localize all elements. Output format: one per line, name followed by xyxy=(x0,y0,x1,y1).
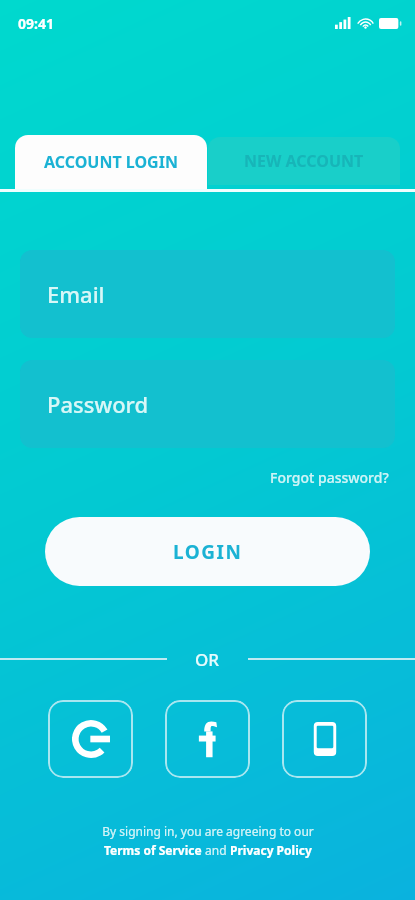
button[interactable]: Forgot password? xyxy=(266,464,393,491)
button[interactable]: Terms of Service xyxy=(104,842,202,858)
staticText: 09:41 xyxy=(18,14,54,33)
button[interactable]: NEW ACCOUNT xyxy=(208,137,400,185)
staticText: Privacy Policy xyxy=(230,842,312,858)
staticText: ACCOUNT LOGIN xyxy=(44,151,178,173)
staticText: Terms of Service xyxy=(104,842,202,858)
button[interactable]: Sign in with phone xyxy=(282,700,367,778)
staticText: LOGIN xyxy=(173,539,243,565)
button[interactable]: Email xyxy=(20,250,395,338)
staticText: and xyxy=(202,842,230,858)
button[interactable]: Privacy Policy xyxy=(230,842,312,858)
staticText: Password xyxy=(47,389,149,419)
button[interactable]: LOGIN xyxy=(45,517,370,586)
button[interactable]: Sign in with Google xyxy=(48,700,133,778)
button[interactable]: Password xyxy=(20,360,395,448)
button[interactable]: Sign in with Facebook xyxy=(165,700,250,778)
staticText: NEW ACCOUNT xyxy=(244,150,364,172)
staticText: Email xyxy=(47,279,105,309)
staticText: Forgot password? xyxy=(270,468,389,487)
staticText: By signing in, you are agreeing to our xyxy=(102,823,314,839)
staticText: OR xyxy=(195,648,220,670)
button[interactable]: ACCOUNT LOGIN xyxy=(15,135,207,189)
